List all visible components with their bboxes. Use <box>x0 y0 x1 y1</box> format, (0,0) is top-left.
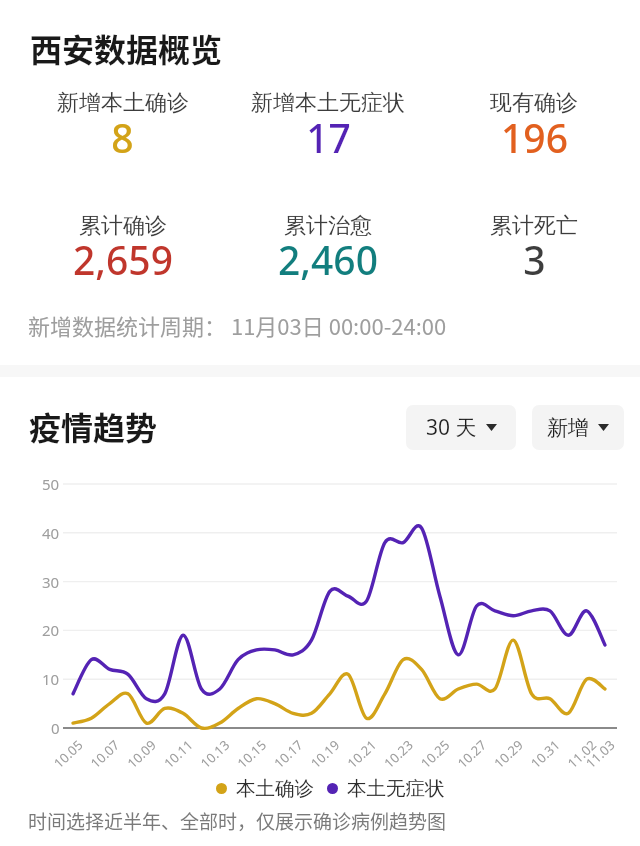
staticText: 西安数据概览 <box>30 25 223 71</box>
staticText: 现有确诊 <box>490 89 578 117</box>
staticText: 疫情趋势 <box>29 403 158 449</box>
staticText: 时间选择近半年、全部时，仅展示确诊病例趋势图 <box>28 807 447 835</box>
staticText: 累计死亡 <box>490 212 578 240</box>
staticText: 本土无症状 <box>347 776 445 801</box>
staticText: 新增数据统计周期： 11月03日 00:00-24:00 <box>28 309 447 341</box>
staticText: 累计治愈 <box>284 212 372 240</box>
button[interactable]: 30 天 <box>406 405 516 450</box>
button[interactable]: 本土无症状 <box>327 774 445 803</box>
staticText: 17 <box>306 111 351 164</box>
button[interactable]: 新增 <box>532 405 624 450</box>
staticText: 2,659 <box>73 233 173 286</box>
staticText: 196 <box>501 111 568 164</box>
staticText: 新增 <box>547 415 589 441</box>
staticText: 8 <box>111 111 134 164</box>
staticText: 新增本土确诊 <box>57 89 189 117</box>
button[interactable]: 本土确诊 <box>216 774 314 803</box>
staticText: 3 <box>523 233 546 286</box>
staticText: 新增本土无症状 <box>251 89 405 117</box>
staticText: 30 天 <box>426 413 477 442</box>
staticText: 2,460 <box>278 233 378 286</box>
staticText: 累计确诊 <box>79 212 167 240</box>
staticText: 本土确诊 <box>236 776 314 801</box>
